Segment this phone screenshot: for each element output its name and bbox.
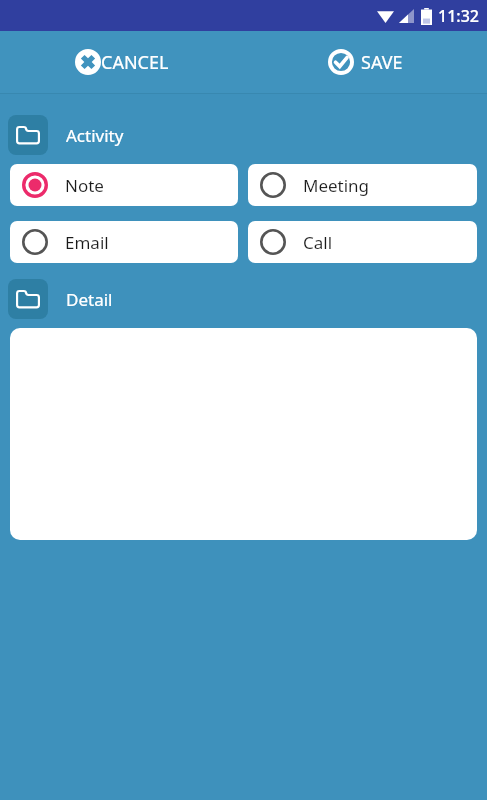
staticText: Note	[65, 174, 104, 197]
other: Cancel	[75, 49, 101, 75]
button[interactable]: Save	[243, 31, 487, 93]
button[interactable]: Call	[248, 221, 477, 263]
staticText: CANCEL	[101, 50, 169, 75]
staticText: SAVE	[361, 50, 403, 75]
button[interactable]: Note	[10, 164, 238, 206]
other: Save	[328, 49, 354, 75]
staticText: Email	[65, 231, 109, 254]
button[interactable]: Email	[10, 221, 238, 263]
button[interactable]: Meeting	[248, 164, 477, 206]
staticText: Call	[303, 231, 333, 254]
staticText: Detail	[66, 288, 113, 311]
button[interactable]	[10, 328, 477, 540]
staticText: Meeting	[303, 174, 370, 197]
staticText: Activity	[66, 124, 124, 147]
button[interactable]: Cancel	[0, 31, 243, 93]
staticText: 11:32	[438, 5, 479, 27]
